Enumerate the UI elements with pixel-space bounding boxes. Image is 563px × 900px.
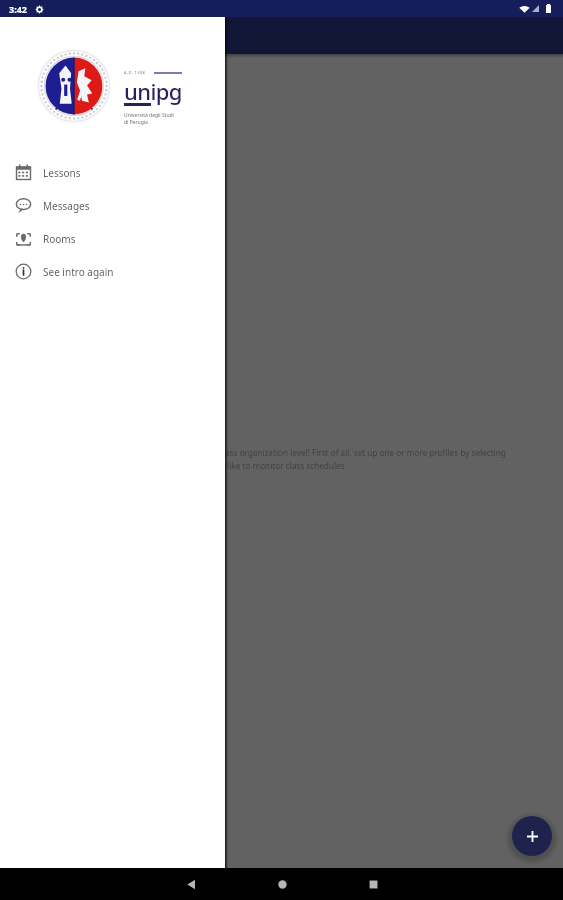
staticText: Welcome to UniPG Schedule, the app to ra… bbox=[24, 447, 517, 472]
button[interactable]: See intro again bbox=[0, 255, 225, 288]
button[interactable]: Back bbox=[181, 874, 201, 894]
button[interactable]: Rooms bbox=[0, 222, 225, 255]
staticText: Lessons bbox=[43, 166, 81, 180]
staticText: unipg bbox=[124, 76, 182, 106]
button[interactable]: Add bbox=[512, 816, 552, 856]
staticText: See intro again bbox=[43, 265, 114, 279]
button[interactable]: Recents bbox=[363, 874, 383, 894]
staticText: Rooms bbox=[43, 232, 76, 246]
button[interactable]: Messages bbox=[0, 189, 225, 222]
staticText: 3:42 bbox=[9, 3, 27, 15]
button[interactable]: Lessons bbox=[0, 156, 225, 189]
button[interactable]: Home bbox=[272, 874, 292, 894]
staticText: A.D. 1308 bbox=[124, 70, 146, 75]
staticText: Università degli Studi di Perugia bbox=[124, 112, 174, 126]
staticText: Messages bbox=[43, 199, 90, 213]
